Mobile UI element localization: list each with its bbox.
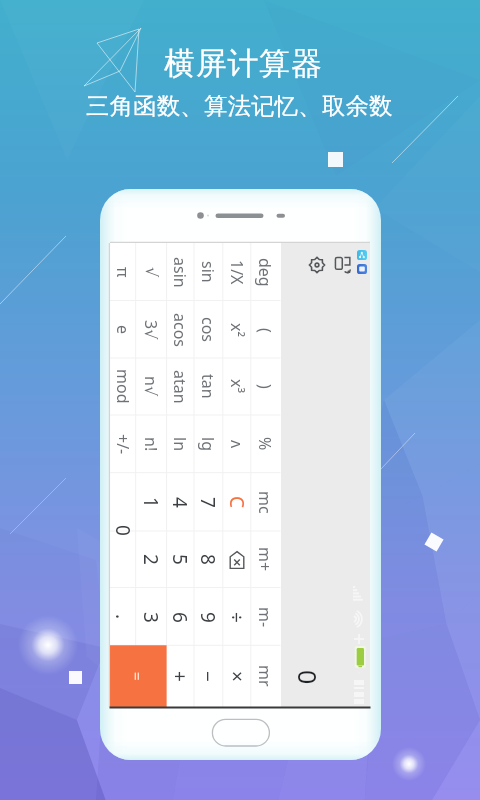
- staticText: 5: [167, 554, 193, 565]
- button[interactable]: e: [110, 301, 136, 359]
- button[interactable]: lg: [194, 415, 223, 473]
- button[interactable]: +: [167, 645, 194, 707]
- staticText: ʌ: [226, 440, 248, 449]
- button[interactable]: 6: [167, 588, 194, 646]
- staticText: x³: [226, 379, 248, 394]
- staticText: asin: [169, 257, 191, 288]
- button[interactable]: mod: [110, 358, 136, 415]
- staticText: mr: [254, 665, 276, 687]
- staticText: 1: [138, 497, 164, 508]
- staticText: =: [128, 672, 148, 681]
- button[interactable]: .: [110, 588, 136, 646]
- button[interactable]: ln: [167, 415, 194, 473]
- staticText: 横屏计算器: [164, 44, 323, 83]
- button[interactable]: Settings: [308, 256, 326, 274]
- button[interactable]: mc: [250, 473, 280, 531]
- staticText: ÷: [224, 612, 250, 623]
- button[interactable]: Quick share: [357, 250, 367, 260]
- button[interactable]: 2: [136, 531, 167, 588]
- button[interactable]: deg: [250, 243, 280, 301]
- staticText: 9: [195, 612, 221, 623]
- button[interactable]: 3: [136, 588, 167, 646]
- staticText: mc: [254, 491, 276, 514]
- button[interactable]: 1/X: [223, 243, 251, 301]
- staticText: ln: [169, 437, 191, 452]
- button[interactable]: 5: [167, 531, 194, 588]
- button[interactable]: sin: [194, 243, 223, 301]
- staticText: 0: [291, 670, 325, 685]
- button[interactable]: acos: [167, 301, 194, 359]
- staticText: 1/X: [226, 260, 248, 285]
- staticText: C: [224, 496, 250, 509]
- button[interactable]: m-: [250, 588, 280, 646]
- button[interactable]: 3√: [136, 301, 167, 359]
- staticText: tan: [197, 374, 219, 399]
- button[interactable]: mr: [250, 645, 280, 707]
- button[interactable]: atan: [167, 358, 194, 415]
- staticText: √: [142, 267, 161, 278]
- button[interactable]: C: [223, 473, 251, 531]
- staticText: e: [112, 325, 134, 335]
- staticText: 8: [195, 554, 221, 565]
- button[interactable]: ʌ: [223, 415, 251, 473]
- staticText: lg: [197, 437, 219, 451]
- button[interactable]: ): [250, 358, 280, 415]
- staticText: 7: [195, 497, 221, 508]
- button[interactable]: [223, 531, 251, 588]
- staticText: x²: [226, 323, 248, 338]
- button[interactable]: −: [194, 645, 223, 707]
- staticText: m+: [254, 547, 276, 572]
- button[interactable]: x²: [223, 301, 251, 359]
- button[interactable]: cos: [194, 301, 223, 359]
- staticText: −: [195, 671, 221, 682]
- button[interactable]: 4: [167, 473, 194, 531]
- button[interactable]: 9: [194, 588, 223, 646]
- staticText: atan: [169, 370, 191, 404]
- button[interactable]: Quick note: [357, 264, 367, 274]
- button[interactable]: asin: [167, 243, 194, 301]
- button[interactable]: ÷: [223, 588, 251, 646]
- staticText: 6: [167, 612, 193, 623]
- staticText: cos: [197, 317, 219, 343]
- button[interactable]: tan: [194, 358, 223, 415]
- staticText: π: [112, 267, 134, 278]
- button[interactable]: %: [250, 415, 280, 473]
- staticText: sin: [197, 261, 219, 283]
- button[interactable]: 0: [110, 473, 136, 588]
- button[interactable]: n√: [136, 358, 167, 415]
- button[interactable]: π: [110, 243, 136, 301]
- button[interactable]: =: [110, 645, 167, 707]
- button[interactable]: 1: [136, 473, 167, 531]
- staticText: 0: [110, 525, 136, 536]
- staticText: +: [167, 671, 193, 682]
- staticText: ×: [224, 671, 250, 682]
- button[interactable]: +/-: [110, 415, 136, 473]
- staticText: 3: [138, 612, 164, 623]
- staticText: 4: [167, 497, 193, 508]
- button[interactable]: (: [250, 301, 280, 359]
- button[interactable]: 8: [194, 531, 223, 588]
- staticText: n√: [140, 376, 162, 397]
- staticText: mod: [112, 369, 134, 404]
- staticText: n!: [140, 437, 162, 452]
- staticText: 2: [138, 554, 164, 565]
- button[interactable]: x³: [223, 358, 251, 415]
- staticText: 3√: [140, 320, 162, 340]
- button[interactable]: m+: [250, 531, 280, 588]
- staticText: (: [254, 328, 276, 333]
- button[interactable]: n!: [136, 415, 167, 473]
- button[interactable]: Rotate screen: [334, 256, 352, 274]
- staticText: .: [110, 614, 136, 620]
- staticText: acos: [169, 313, 191, 348]
- button[interactable]: 7: [194, 473, 223, 531]
- staticText: m-: [254, 607, 276, 628]
- staticText: deg: [254, 258, 276, 287]
- button[interactable]: ×: [223, 645, 251, 707]
- staticText: +/-: [112, 434, 134, 455]
- staticText: 三角函数、算法记忆、取余数: [86, 91, 393, 120]
- staticText: ): [254, 384, 276, 389]
- button[interactable]: √: [136, 243, 167, 301]
- staticText: %: [254, 437, 276, 451]
